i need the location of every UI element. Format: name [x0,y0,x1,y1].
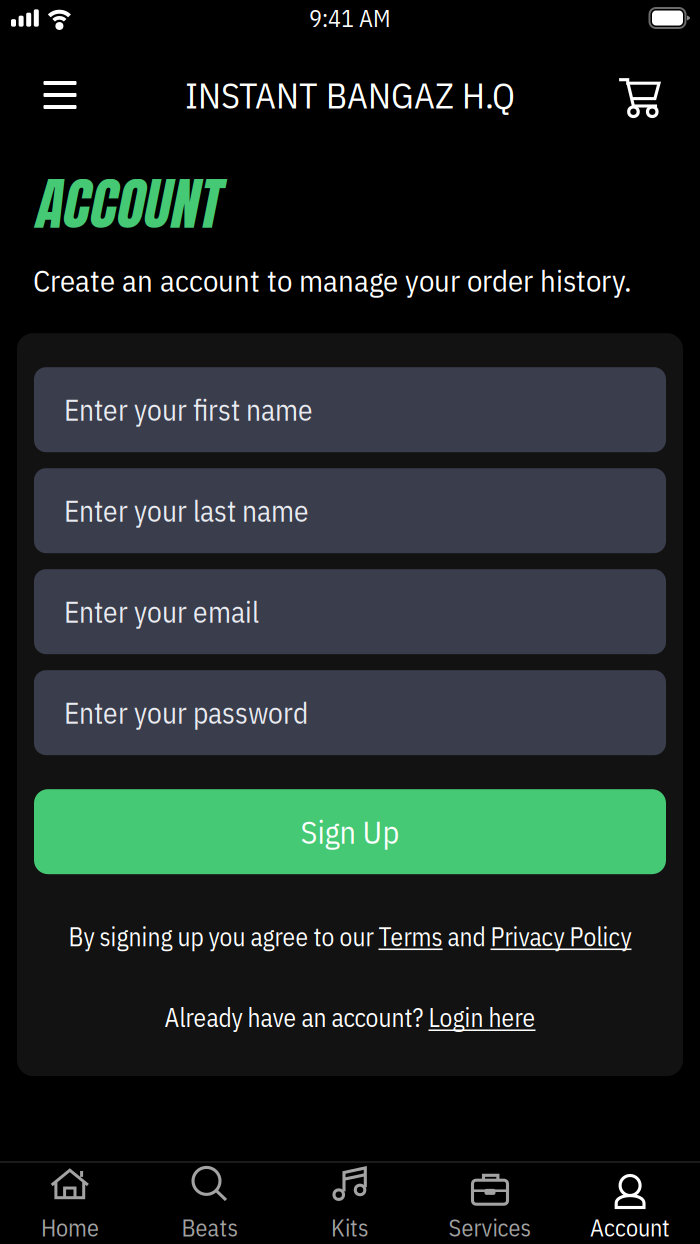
staticText: Enter your first name [64,391,313,429]
button[interactable]: Services [420,1152,560,1244]
staticText: Terms [378,920,442,953]
staticText: and [442,920,490,953]
staticText: Home [41,1212,99,1243]
staticText: INSTANT BANGAZ H.Q [185,72,515,118]
staticText: ACCOUNT [33,162,218,246]
staticText: Login here [428,1001,535,1034]
button[interactable]: Login here [428,1001,535,1034]
staticText: Already have an account? [164,1001,428,1034]
button[interactable]: Menu [27,65,93,125]
button[interactable]: Privacy Policy [490,920,631,953]
button[interactable]: Beats [140,1152,280,1244]
staticText: Create an account to manage your order h… [33,260,632,300]
staticText: Beats [181,1212,238,1243]
button[interactable]: Cart [606,65,672,125]
button[interactable]: Terms [378,920,442,953]
staticText: Enter your last name [64,492,309,530]
staticText: Kits [331,1212,369,1243]
staticText: Services [448,1212,531,1243]
button[interactable]: Enter your password [34,670,666,755]
staticText: Enter your email [64,593,259,631]
staticText: Privacy Policy [490,920,631,953]
button[interactable]: Home [0,1152,140,1244]
button[interactable]: Enter your last name [34,468,666,553]
staticText: Account [590,1212,670,1243]
button[interactable]: Enter your email [34,569,666,654]
staticText: By signing up you agree to our [68,920,378,953]
button[interactable]: Account [560,1152,700,1244]
staticText: 9:41 AM [309,2,391,34]
staticText: Enter your password [64,694,308,732]
staticText: Sign Up [300,811,399,852]
button[interactable]: Kits [280,1152,420,1244]
button[interactable]: Enter your first name [34,367,666,452]
button[interactable]: Sign Up [34,789,666,874]
